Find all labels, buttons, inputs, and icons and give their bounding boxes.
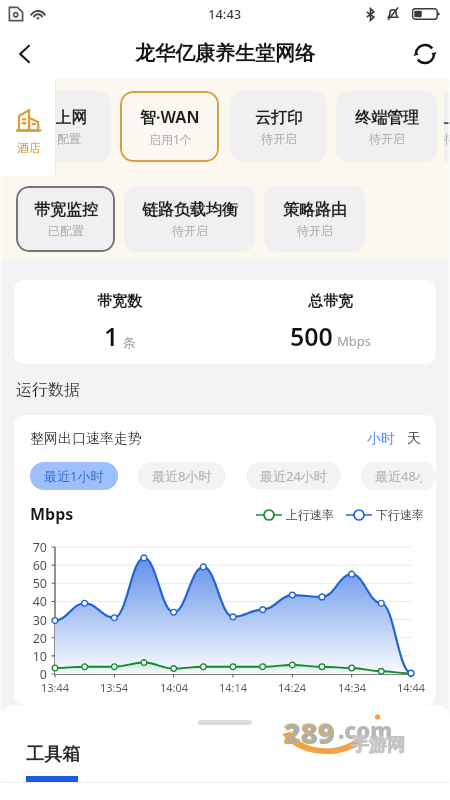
button[interactable]: Back	[0, 29, 50, 79]
staticText: Mbps	[337, 332, 372, 350]
button[interactable]: 最近48小时	[361, 462, 436, 490]
button[interactable]: Refresh	[400, 29, 450, 79]
staticText: 10	[15, 648, 47, 665]
button[interactable]: 链路负载均衡	[124, 186, 255, 252]
staticText: 天	[407, 430, 421, 448]
staticText: 带宽数	[97, 292, 142, 311]
staticText: 工具箱	[26, 743, 80, 766]
button[interactable]: 最近1小时	[30, 462, 118, 490]
staticText: 酒店	[17, 140, 41, 155]
button[interactable]: 云打印	[230, 91, 327, 162]
staticText: 20	[15, 630, 47, 647]
staticText: 1	[104, 319, 119, 353]
staticText: 手游网	[351, 734, 405, 757]
staticText: 14:44	[392, 680, 430, 695]
staticText: 14:24	[273, 680, 311, 695]
staticText: 带宽监控	[34, 200, 98, 220]
staticText: 启用1个	[149, 131, 192, 147]
button[interactable]: 带宽监控	[16, 186, 115, 252]
staticText: 终端管理	[355, 108, 419, 128]
staticText: 13:44	[36, 680, 74, 695]
staticText: 最近1小时	[44, 467, 104, 485]
staticText: 总带宽	[308, 292, 353, 311]
staticText: 待开启	[297, 223, 333, 238]
staticText: 待开启	[444, 131, 450, 146]
button[interactable]: 智·WAN	[120, 91, 219, 162]
button[interactable]: 上网行为	[444, 91, 450, 162]
button[interactable]: 畅上网	[14, 91, 111, 162]
staticText: 最近48小时	[375, 467, 422, 485]
staticText: 待开启	[261, 131, 297, 146]
button[interactable]: 终端管理	[336, 91, 437, 162]
button[interactable]: 策略路由	[264, 186, 365, 252]
staticText: 策略路由	[283, 200, 347, 220]
staticText: 500	[290, 319, 333, 353]
staticText: 70	[15, 539, 47, 556]
staticText: 上网行为	[444, 108, 450, 128]
button[interactable]: 酒店	[0, 79, 56, 176]
staticText: .com	[338, 715, 393, 745]
staticText: 龙华亿康养生堂网络	[135, 41, 315, 66]
staticText: 14:34	[333, 680, 371, 695]
staticText: 14:43	[208, 5, 242, 23]
staticText: 畅上网	[39, 108, 87, 128]
button[interactable]: 天	[405, 430, 423, 448]
staticText: 云打印	[255, 108, 303, 128]
staticText: 最近8小时	[152, 467, 212, 485]
staticText: 289	[283, 712, 334, 751]
staticText: 已配置	[45, 131, 81, 146]
staticText: 30	[15, 612, 47, 629]
staticText: 最近24小时	[260, 467, 327, 485]
staticText: 下行速率	[376, 507, 424, 522]
staticText: 13:54	[95, 680, 133, 695]
staticText: 整网出口速率走势	[30, 430, 142, 448]
staticText: 14:14	[214, 680, 252, 695]
staticText: 已配置	[48, 223, 84, 238]
button[interactable]: 小时	[365, 430, 397, 448]
staticText: 50	[15, 575, 47, 592]
staticText: 条	[123, 334, 136, 350]
button[interactable]: 上行速率	[256, 507, 334, 522]
button[interactable]: 工具箱	[26, 705, 80, 782]
staticText: 待开启	[369, 131, 405, 146]
staticText: 14:04	[155, 680, 193, 695]
staticText: 40	[15, 593, 47, 610]
staticText: 0	[15, 666, 47, 683]
staticText: Mbps	[30, 503, 74, 525]
button[interactable]: 下行速率	[346, 507, 424, 522]
staticText: 运行数据	[16, 380, 80, 400]
staticText: 链路负载均衡	[142, 200, 238, 220]
staticText: 小时	[367, 430, 395, 448]
button[interactable]: 最近24小时	[246, 462, 341, 490]
staticText: 智·WAN	[140, 106, 200, 128]
staticText: 289	[284, 713, 335, 752]
staticText: 上行速率	[286, 507, 334, 522]
button[interactable]: 最近8小时	[138, 462, 226, 490]
staticText: 60	[15, 557, 47, 574]
staticText: 待开启	[172, 223, 208, 238]
